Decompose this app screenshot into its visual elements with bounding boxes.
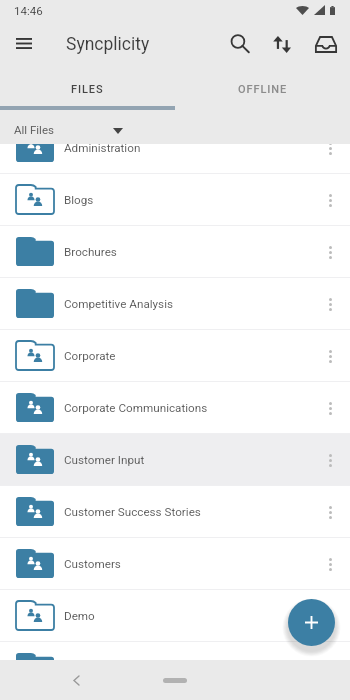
button[interactable]: Competitive Analysis xyxy=(0,278,350,330)
button[interactable]: Customers xyxy=(0,538,350,590)
button[interactable]: More options xyxy=(311,180,350,220)
button[interactable]: OFFLINE xyxy=(175,78,350,110)
staticText: Customers xyxy=(64,557,121,571)
button[interactable]: More options xyxy=(311,144,350,168)
staticText: Syncplicity xyxy=(66,34,150,55)
staticText: OFFLINE xyxy=(238,83,288,96)
button[interactable]: Corporate xyxy=(0,330,350,382)
staticText: Competitive Analysis xyxy=(64,297,174,311)
staticText: All Files xyxy=(14,123,54,136)
staticText: Demo xyxy=(64,609,95,623)
button[interactable]: Add xyxy=(288,599,335,646)
staticText: Administration xyxy=(64,144,141,155)
button[interactable]: Sort xyxy=(262,24,302,64)
staticText: Corporate Communications xyxy=(64,401,208,415)
staticText: Customer Success Stories xyxy=(64,505,201,519)
staticText: 14:46 xyxy=(14,4,43,17)
staticText: Brochures xyxy=(64,245,117,259)
button[interactable]: FILES xyxy=(0,78,175,110)
button[interactable]: Search xyxy=(220,24,260,64)
button[interactable]: Customer Input xyxy=(0,434,350,486)
staticText: Corporate xyxy=(64,349,116,363)
button[interactable]: More options xyxy=(311,284,350,324)
button[interactable]: Blogs xyxy=(0,174,350,226)
button[interactable]: Corporate Communications xyxy=(0,382,350,434)
button[interactable]: Inbox xyxy=(306,24,346,64)
button[interactable]: Administration xyxy=(0,144,350,174)
button[interactable]: Open navigation menu xyxy=(4,23,44,63)
staticText: Blogs xyxy=(64,193,94,207)
staticText: Customer Input xyxy=(64,453,145,467)
button[interactable]: Brochures xyxy=(0,226,350,278)
button[interactable]: Home xyxy=(163,678,187,683)
button[interactable]: Design xyxy=(0,642,350,694)
staticText: FILES xyxy=(71,83,104,96)
button[interactable]: All Files xyxy=(0,110,350,144)
button[interactable]: Demo xyxy=(0,590,350,642)
button[interactable]: Customer Success Stories xyxy=(0,486,350,538)
button[interactable]: More options xyxy=(311,648,350,688)
button[interactable]: More options xyxy=(311,544,350,584)
button[interactable]: More options xyxy=(311,596,350,636)
button[interactable]: Back xyxy=(64,668,88,692)
button[interactable]: More options xyxy=(311,388,350,428)
button[interactable]: More options xyxy=(311,232,350,272)
button[interactable]: More options xyxy=(311,492,350,532)
button[interactable]: More options xyxy=(311,440,350,480)
button[interactable]: More options xyxy=(311,336,350,376)
